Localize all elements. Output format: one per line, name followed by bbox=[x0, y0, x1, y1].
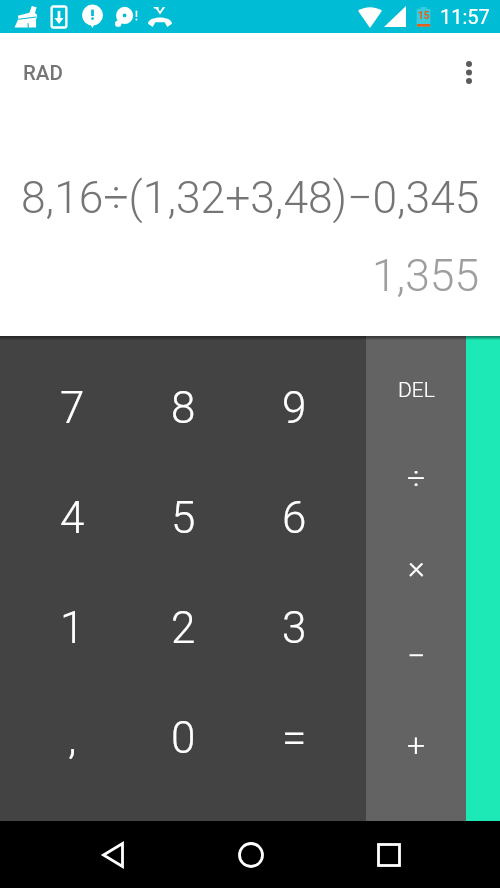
staticText: 11:57 bbox=[440, 5, 490, 28]
button[interactable]: ÷ bbox=[366, 434, 466, 522]
staticText: 6 bbox=[282, 492, 307, 544]
button[interactable]: 3 bbox=[239, 573, 350, 683]
staticText: 9 bbox=[282, 382, 307, 434]
button[interactable]: × bbox=[366, 522, 466, 611]
button[interactable]: 8 bbox=[128, 353, 239, 463]
staticText: 15 bbox=[418, 10, 430, 22]
staticText: 4 bbox=[60, 492, 85, 544]
staticText: × bbox=[408, 548, 425, 586]
button[interactable]: 0 bbox=[128, 683, 239, 793]
staticText: − bbox=[407, 637, 426, 675]
button[interactable]: 4 bbox=[16, 463, 128, 573]
button[interactable]: , bbox=[16, 683, 128, 793]
button[interactable]: 1 bbox=[16, 573, 128, 683]
staticText: 1,355 bbox=[372, 250, 480, 302]
button[interactable]: − bbox=[366, 611, 466, 700]
button[interactable]: 2 bbox=[128, 573, 239, 683]
staticText: 0 bbox=[171, 712, 196, 764]
staticText: RAD bbox=[23, 61, 63, 85]
staticText: = bbox=[282, 712, 307, 764]
button[interactable]: Expand pad bbox=[466, 336, 500, 821]
staticText: DEL bbox=[398, 378, 435, 403]
button[interactable]: 9 bbox=[239, 353, 350, 463]
staticText: 2 bbox=[171, 602, 196, 654]
button[interactable]: 6 bbox=[239, 463, 350, 573]
button[interactable]: Back bbox=[66, 821, 159, 888]
button[interactable]: + bbox=[366, 700, 466, 789]
button[interactable]: 7 bbox=[16, 353, 128, 463]
staticText: 3 bbox=[282, 602, 307, 654]
button[interactable]: = bbox=[239, 683, 350, 793]
button[interactable]: More options bbox=[449, 52, 500, 93]
button[interactable]: 5 bbox=[128, 463, 239, 573]
button[interactable]: RAD bbox=[0, 57, 86, 89]
staticText: 1 bbox=[60, 602, 85, 654]
staticText: 8 bbox=[171, 382, 196, 434]
staticText: , bbox=[68, 712, 77, 764]
button[interactable]: DEL bbox=[366, 346, 466, 434]
staticText: 8,16÷(1,32+3,48)−0,345 bbox=[21, 172, 480, 224]
staticText: 7 bbox=[60, 382, 85, 434]
staticText: + bbox=[407, 726, 426, 764]
staticText: 5 bbox=[171, 492, 196, 544]
button[interactable]: Recent apps bbox=[342, 821, 435, 888]
button[interactable]: Home bbox=[204, 821, 297, 888]
staticText: ÷ bbox=[407, 459, 426, 497]
